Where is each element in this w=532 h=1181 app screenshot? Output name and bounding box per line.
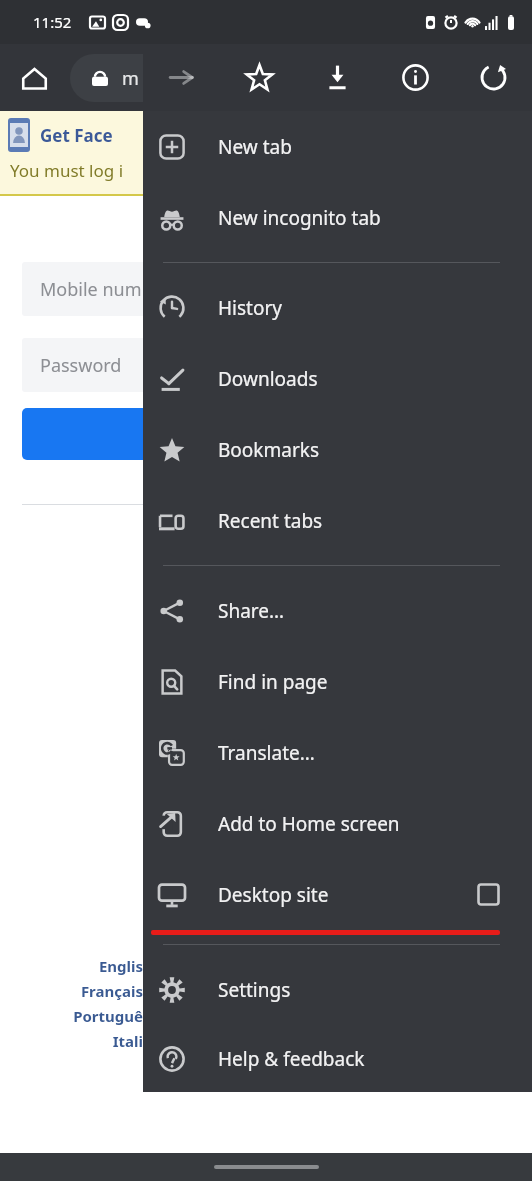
button[interactable]: Translate… [143,717,532,788]
staticText: Desktop site [218,882,477,908]
staticText: Bookmarks [218,437,532,463]
button[interactable]: Page info [376,44,454,111]
button[interactable]: Français [0,981,143,1001]
staticText: New tab [218,134,532,160]
button[interactable]: Home [10,54,58,102]
staticText: Settings [218,977,532,1003]
staticText: History [218,295,532,321]
button[interactable]: Share… [143,575,532,646]
button[interactable]: m [70,54,370,102]
button[interactable]: New incognito tab [143,182,532,253]
button[interactable]: Settings [143,954,532,1025]
button[interactable]: Englis [0,956,143,976]
button[interactable]: New tab [143,111,532,182]
staticText: Get Face [40,124,113,147]
staticText: Recent tabs [218,508,532,534]
button[interactable]: Help & feedback [143,1025,532,1092]
staticText: Find in page [218,669,532,695]
button[interactable]: Add to Home screen [143,788,532,859]
button[interactable]: Bookmark [220,44,298,111]
staticText: Mobile num [40,277,142,302]
staticText: Password [40,353,122,378]
staticText: You must log i [10,159,124,182]
button[interactable]: Download [298,44,376,111]
staticText: Translate… [218,740,532,766]
button[interactable]: Downloads [143,343,532,414]
button[interactable]: Recent tabs [143,485,532,556]
staticText: Help & feedback [218,1046,532,1072]
staticText: Downloads [218,366,532,392]
button[interactable] [22,408,282,460]
button[interactable]: Find in page [143,646,532,717]
staticText: Add to Home screen [218,811,532,837]
staticText: New incognito tab [218,205,532,231]
staticText: m [122,66,139,91]
button[interactable]: Forward [143,44,220,111]
staticText: 11:52 [33,12,72,32]
button[interactable]: History [143,272,532,343]
staticText: Share… [218,598,532,624]
button[interactable]: Reload [454,44,532,111]
button[interactable]: Bookmarks [143,414,532,485]
button[interactable]: Portuguê [0,1006,143,1026]
button[interactable]: Itali [0,1031,143,1051]
button[interactable]: Desktop site [143,859,532,930]
